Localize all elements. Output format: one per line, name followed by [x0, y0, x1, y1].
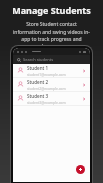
staticText: Student 3 [27, 93, 49, 99]
button[interactable]: Student 2 [13, 78, 90, 92]
staticText: Store Student contact information and sw… [12, 21, 91, 49]
button[interactable]: Student 1 [13, 64, 90, 78]
staticText: Manage Students [12, 4, 91, 16]
staticText: Student 1 [27, 65, 49, 71]
staticText: student1@example.com [27, 72, 66, 77]
button[interactable]: Add student [76, 165, 85, 174]
staticText: student2@example.com [27, 86, 66, 91]
staticText: Search students [23, 57, 54, 62]
button[interactable]: Student 3 [13, 92, 90, 106]
button[interactable]: Search students [13, 55, 90, 64]
staticText: student3@example.com [27, 100, 66, 105]
staticText: Student 2 [27, 79, 49, 85]
